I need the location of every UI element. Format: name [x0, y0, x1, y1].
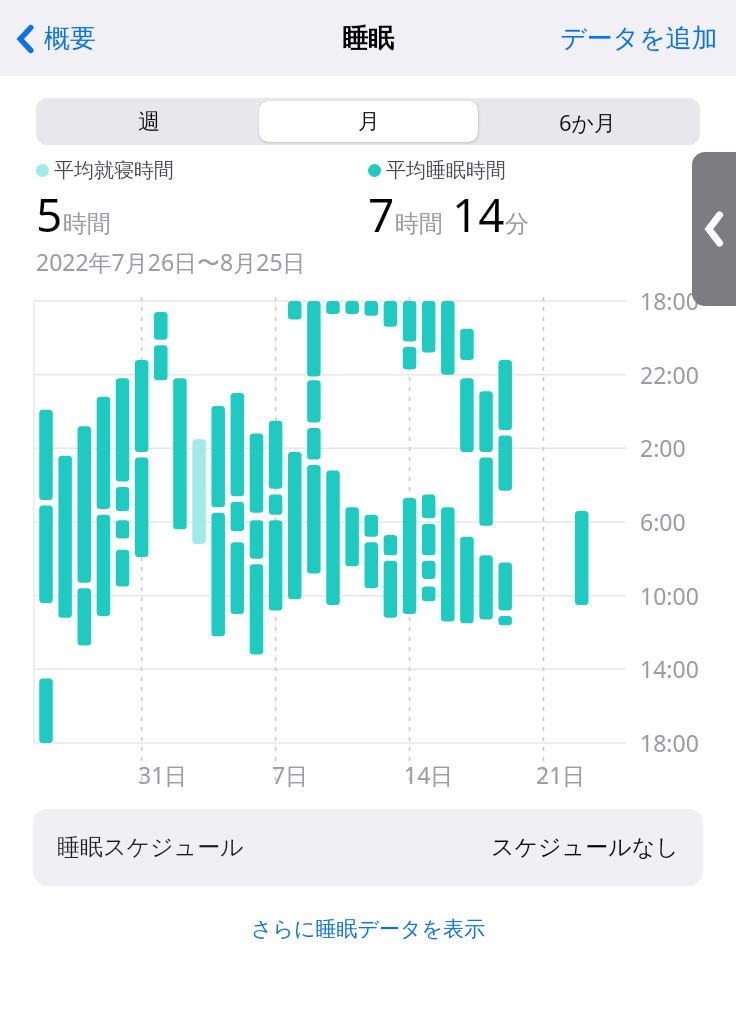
- button[interactable]: 前の期間を表示: [692, 152, 736, 306]
- staticText: 18:00: [640, 727, 699, 758]
- staticText: 14:00: [640, 653, 699, 684]
- staticText: スケジュールなし: [491, 833, 679, 862]
- staticText: 時間: [63, 209, 111, 239]
- staticText: 時間: [395, 209, 443, 239]
- staticText: 7日: [272, 759, 309, 790]
- staticText: 21日: [536, 759, 586, 790]
- staticText: 2:00: [640, 432, 686, 463]
- staticText: 6:00: [640, 506, 686, 537]
- staticText: 22:00: [640, 359, 699, 390]
- staticText: 5: [36, 183, 63, 246]
- staticText: さらに睡眠データを表示: [251, 916, 485, 942]
- staticText: 月: [358, 108, 380, 136]
- staticText: 概要: [44, 22, 96, 55]
- staticText: 10:00: [640, 580, 699, 611]
- button[interactable]: 月: [259, 101, 478, 142]
- staticText: 31日: [138, 759, 188, 790]
- button[interactable]: 睡眠スケジュール: [33, 809, 703, 886]
- staticText: 7: [368, 183, 395, 246]
- staticText: 14: [452, 183, 505, 246]
- staticText: 平均就寝時間: [54, 158, 174, 183]
- staticText: 18:00: [640, 285, 699, 316]
- button[interactable]: 概要: [0, 14, 110, 63]
- button[interactable]: データを追加: [542, 14, 736, 63]
- staticText: データを追加: [560, 22, 718, 55]
- staticText: 週: [138, 108, 160, 136]
- staticText: 睡眠: [342, 22, 394, 55]
- staticText: 14日: [404, 759, 454, 790]
- staticText: 平均睡眠時間: [386, 158, 506, 183]
- button[interactable]: さらに睡眠データを表示: [0, 910, 736, 948]
- staticText: 6か月: [559, 107, 617, 137]
- button[interactable]: 週: [39, 101, 259, 142]
- button[interactable]: 6か月: [478, 101, 697, 142]
- staticText: 分: [505, 209, 529, 239]
- staticText: 睡眠スケジュール: [57, 833, 244, 862]
- staticText: 2022年7月26日〜8月25日: [36, 246, 306, 277]
